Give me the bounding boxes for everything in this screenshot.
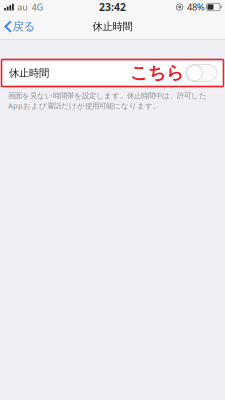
- staticText: 23:42: [99, 0, 126, 14]
- staticText: こちら: [130, 62, 184, 84]
- staticText: 4G: [32, 1, 43, 13]
- staticText: 48%: [187, 1, 205, 13]
- staticText: 休止時間: [92, 20, 132, 33]
- button[interactable]: 戻る: [0, 15, 41, 38]
- button[interactable]: 休止時間: [0, 59, 225, 86]
- staticText: au: [17, 1, 27, 13]
- staticText: 休止時間: [9, 66, 49, 79]
- staticText: 戻る: [12, 19, 35, 34]
- button[interactable]: 休止時間: [186, 64, 217, 81]
- staticText: 画面を見ない時間帯を設定します。休止時間中は、許可したAppおよび電話だけが使用…: [8, 91, 207, 111]
